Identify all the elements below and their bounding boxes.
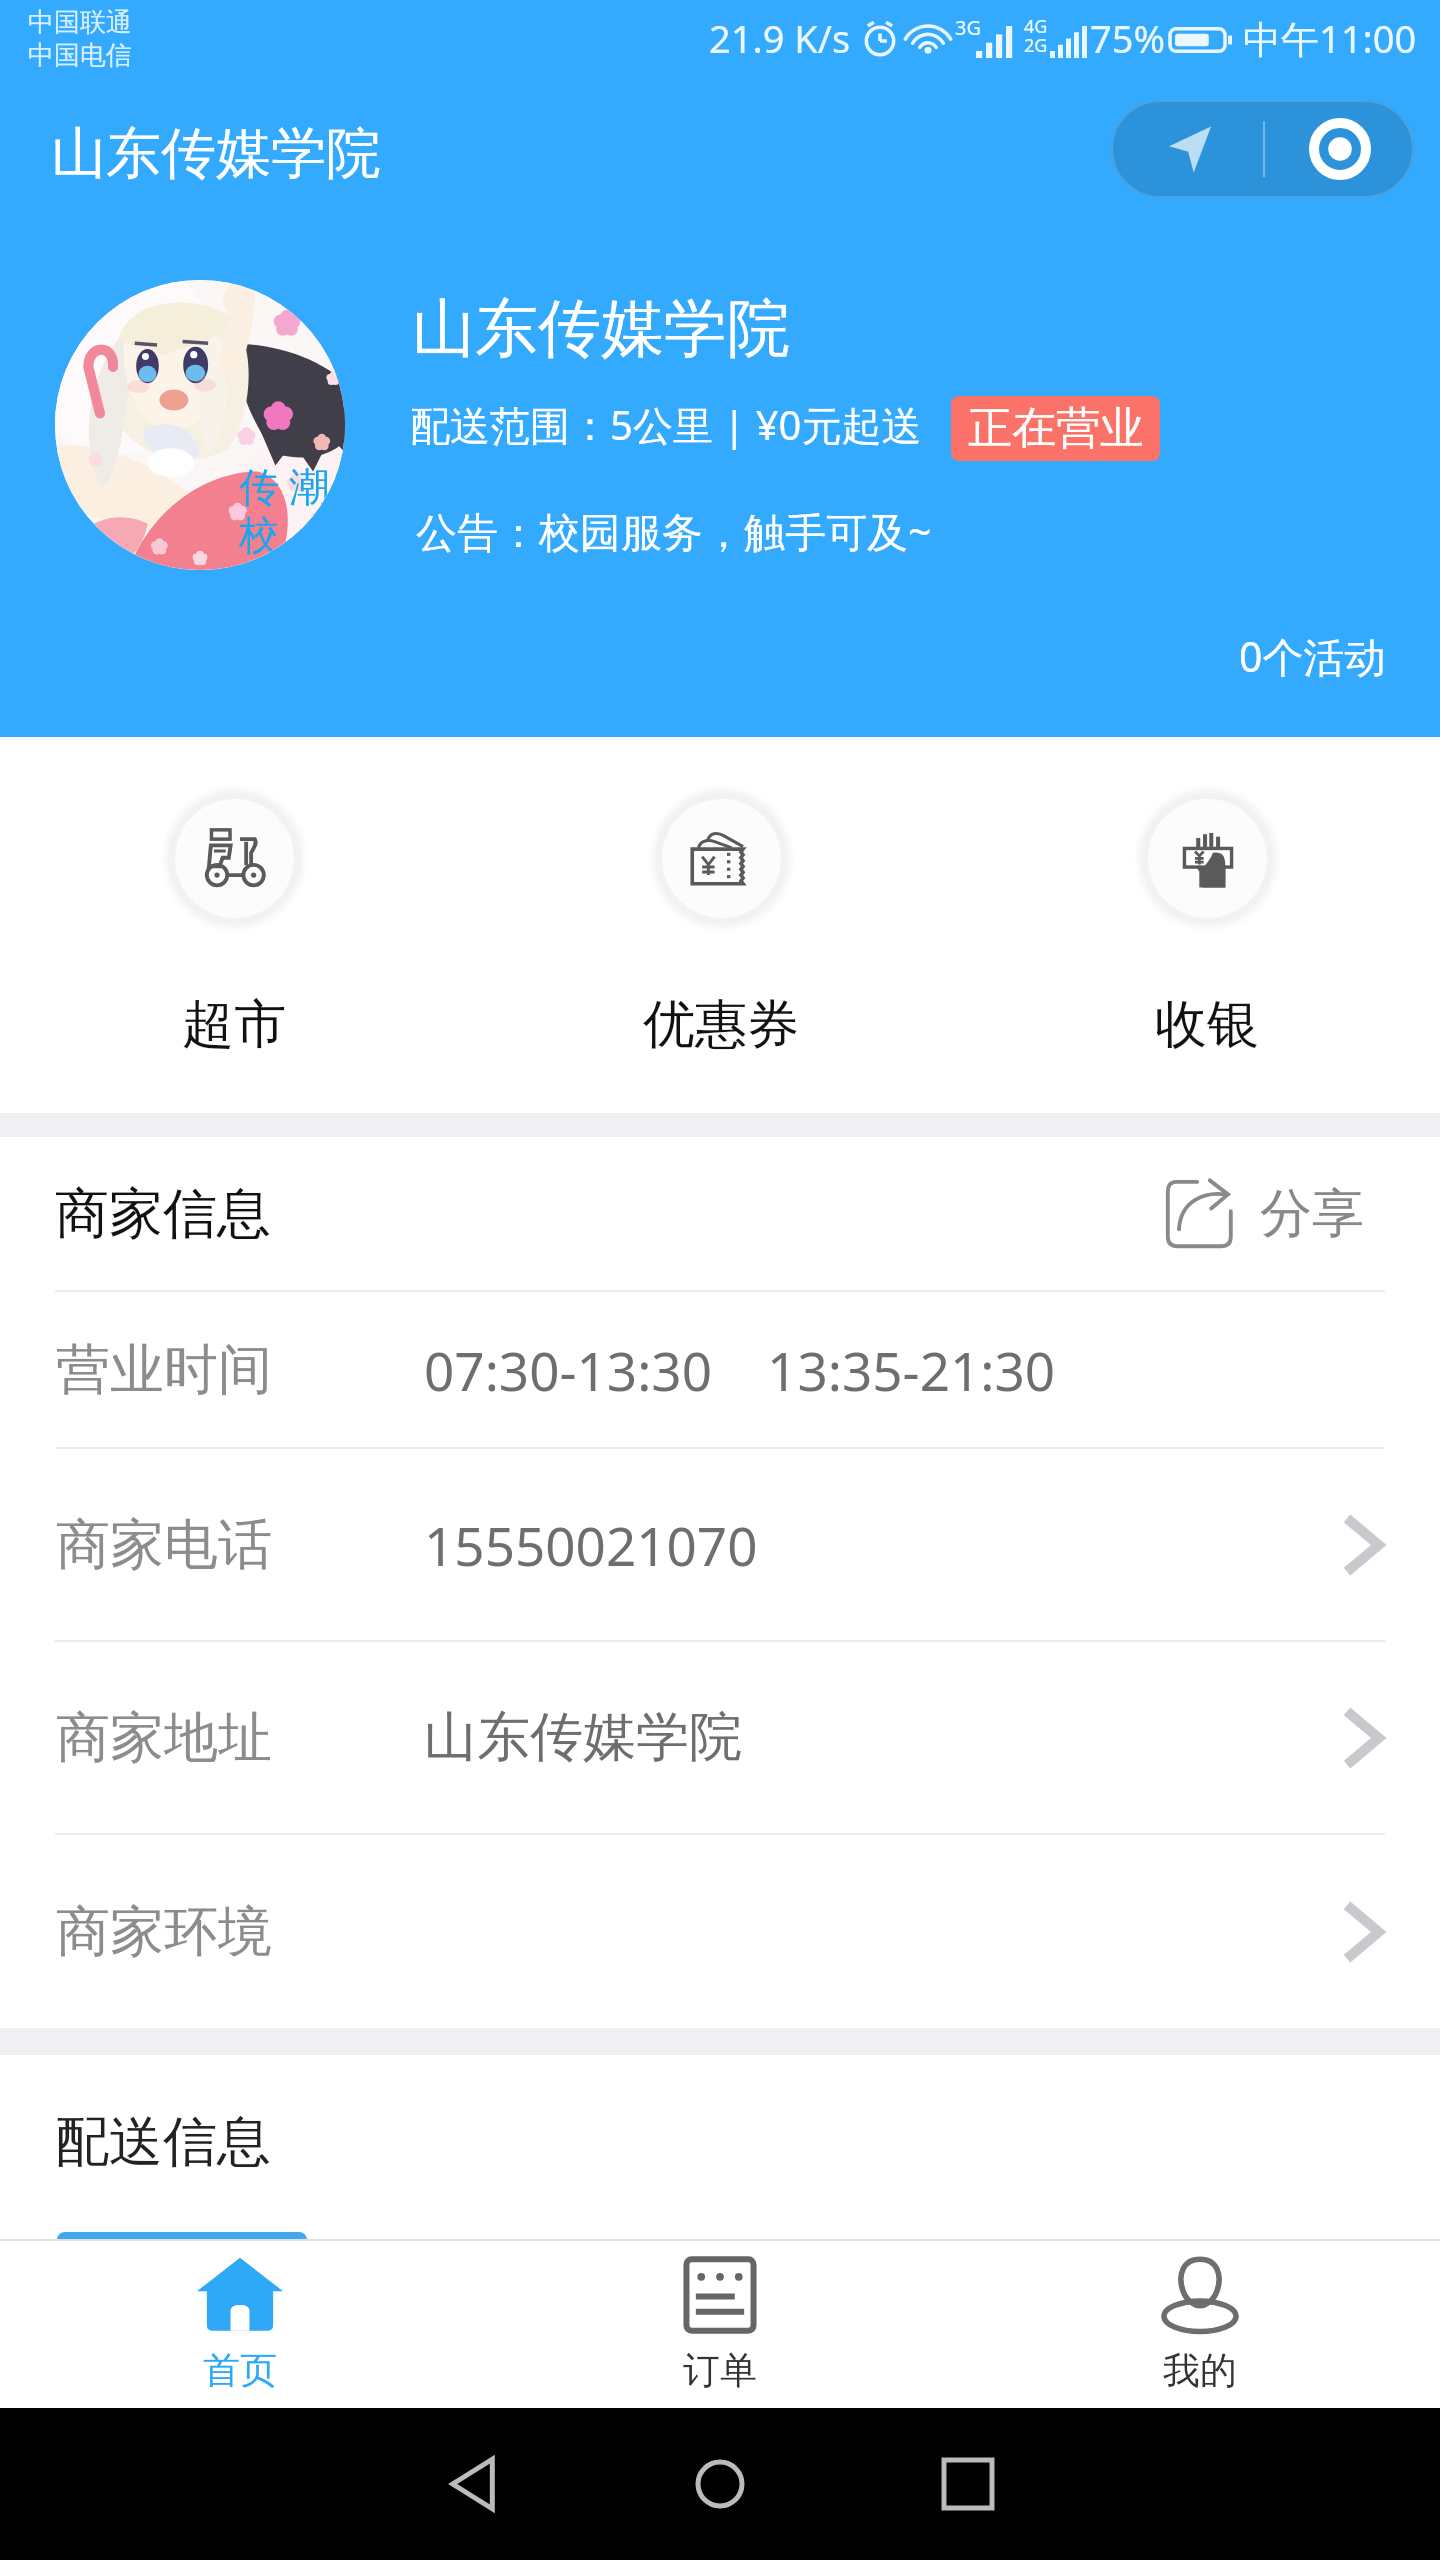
staticText: 收银 (1155, 992, 1259, 1058)
staticText: 订单 (683, 2347, 757, 2394)
staticText: 15550021070 (424, 1509, 758, 1581)
staticText: 传 潮 (239, 458, 330, 513)
staticText: 中午11:00 (1243, 12, 1417, 64)
staticText: 公告：校园服务，触手可及~ (416, 503, 932, 559)
button[interactable]: 商家环境 (0, 1835, 1440, 2028)
staticText: 山东传媒学院 (51, 119, 381, 188)
button[interactable]: 分享 (1165, 1179, 1364, 1249)
staticText: 首页 (203, 2347, 277, 2394)
staticText: 山东传媒学院 (412, 289, 790, 368)
button[interactable]: Navigate to shop (1111, 100, 1263, 198)
button[interactable]: 营业时间 (0, 1292, 1440, 1447)
button[interactable]: Home (654, 2418, 786, 2550)
button[interactable]: 超市 (114, 737, 354, 1113)
staticText: 配送范围：5公里 | ¥0元起送 (410, 397, 922, 452)
button[interactable]: 商家电话 (0, 1449, 1440, 1640)
button[interactable]: 我的 (960, 2241, 1440, 2408)
staticText: 正在营业 (968, 401, 1144, 456)
staticText: 我的 (1163, 2347, 1237, 2394)
button[interactable]: 订单 (480, 2241, 960, 2408)
staticText: 07:30-13:30 13:35-21:30 (424, 1334, 1056, 1406)
button[interactable]: Navigate to shop (1111, 100, 1414, 198)
button[interactable]: Recent apps (902, 2418, 1034, 2550)
staticText: 优惠券 (643, 992, 799, 1058)
staticText: 校 (239, 510, 279, 560)
staticText: 75% (1090, 12, 1166, 64)
staticText: 3G (955, 14, 981, 41)
staticText: 商家地址 (56, 1704, 272, 1772)
staticText: 商家信息 (55, 1180, 271, 1248)
staticText: 商家电话 (56, 1511, 272, 1579)
button[interactable]: Back (407, 2418, 539, 2550)
button[interactable]: 正在营业 (951, 396, 1160, 461)
staticText: 营业时间 (56, 1336, 272, 1404)
button[interactable]: Locate shop on map (1265, 100, 1414, 198)
staticText: 2G (1024, 33, 1048, 58)
button[interactable]: 首页 (0, 2241, 480, 2408)
button[interactable]: 优惠券 (601, 737, 841, 1113)
staticText: 4G (1024, 14, 1048, 39)
staticText: 21.9 K/s (709, 12, 851, 64)
staticText: 配送信息 (55, 2108, 271, 2176)
button[interactable]: 商家地址 (0, 1642, 1440, 1833)
staticText: 中国电信 (28, 39, 132, 72)
staticText: 中国联通 (28, 6, 132, 39)
staticText: 0个活动 (1239, 628, 1386, 684)
staticText: 分享 (1260, 1181, 1364, 1247)
button[interactable]: 收银 (1087, 737, 1327, 1113)
staticText: 山东传媒学院 (424, 1704, 742, 1771)
staticText: 商家环境 (56, 1898, 272, 1966)
staticText: 超市 (182, 992, 286, 1058)
